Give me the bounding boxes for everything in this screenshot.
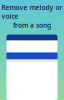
staticText: Remove melody or voice — [1, 3, 62, 21]
staticText: from a song — [13, 21, 51, 30]
